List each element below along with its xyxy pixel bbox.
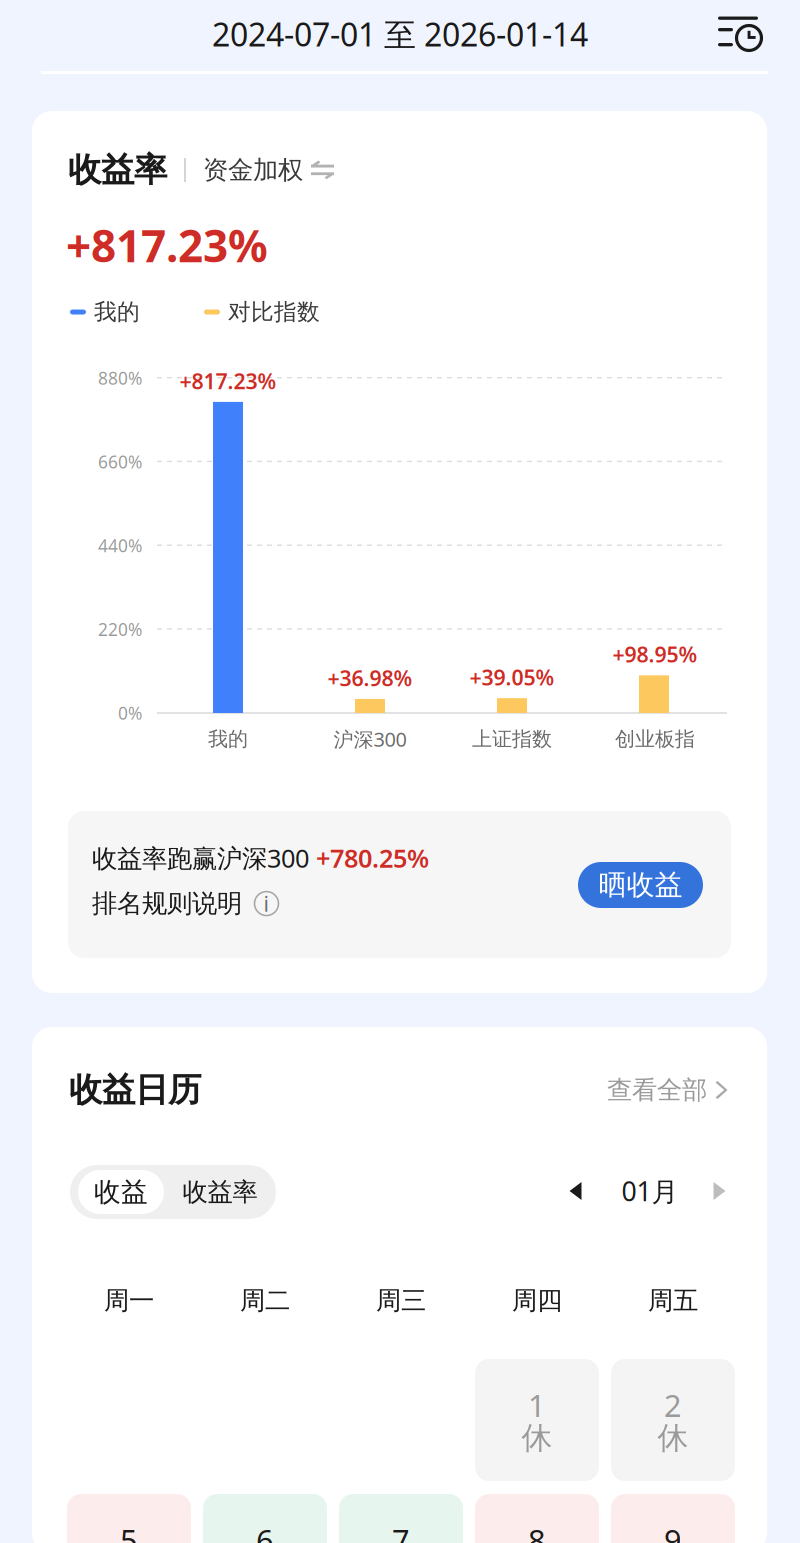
staticText: 创业板指 [615, 727, 695, 751]
staticText: 我的 [208, 727, 248, 751]
staticText: +36.98% [327, 664, 412, 692]
staticText: 对比指数 [228, 298, 320, 326]
button[interactable]: 5 [67, 1494, 191, 1543]
button[interactable]: 晒收益 [578, 862, 703, 908]
staticText: +780.25% [316, 841, 429, 875]
button[interactable]: 查看全部 [607, 1074, 729, 1105]
staticText: 2024-07-01 至 2026-01-14 [212, 13, 588, 55]
button[interactable]: 资金加权 [203, 154, 335, 185]
staticText: 8 [528, 1520, 546, 1543]
staticText: 上证指数 [472, 727, 552, 751]
button[interactable]: 下个月 [701, 1172, 739, 1210]
button[interactable]: 1 [475, 1359, 599, 1481]
staticText: 晒收益 [598, 868, 682, 902]
staticText: 440% [98, 534, 142, 557]
staticText: 收益率跑赢沪深300 [92, 841, 316, 875]
button[interactable]: 2 [611, 1359, 735, 1481]
staticText: 收益日历 [69, 1069, 201, 1110]
staticText: 沪深300 [333, 726, 406, 752]
staticText: +39.05% [469, 663, 554, 691]
button[interactable]: 排名规则说明 [92, 888, 279, 919]
button[interactable]: 上个月 [557, 1172, 595, 1210]
button[interactable]: 6 [203, 1494, 327, 1543]
staticText: 周一 [104, 1285, 154, 1316]
button[interactable]: 收益 [78, 1170, 164, 1214]
staticText: 5 [120, 1520, 138, 1543]
staticText: 周四 [512, 1285, 562, 1316]
staticText: 周五 [648, 1285, 698, 1316]
staticText: 220% [98, 618, 142, 641]
staticText: 2 [664, 1385, 682, 1425]
staticText: 880% [98, 366, 142, 389]
staticText: 1 [528, 1385, 546, 1425]
staticText: 660% [98, 450, 142, 473]
staticText: 收益率 [182, 1176, 257, 1207]
button[interactable]: 收益率 [170, 1170, 270, 1214]
staticText: 资金加权 [203, 154, 303, 185]
staticText: +817.23% [179, 367, 276, 395]
staticText: 我的 [94, 298, 140, 326]
staticText: 休 [521, 1419, 552, 1457]
staticText: 7 [392, 1520, 410, 1543]
staticText: +817.23% [66, 216, 268, 274]
staticText: 查看全部 [607, 1074, 707, 1105]
button[interactable]: 9 [611, 1494, 735, 1543]
staticText: 周三 [376, 1285, 426, 1316]
staticText: 收益率 [68, 149, 167, 190]
button[interactable]: 历史记录 [705, 8, 763, 62]
staticText: +98.95% [612, 640, 697, 668]
staticText: 0% [118, 701, 142, 724]
staticText: i [263, 889, 269, 918]
staticText: 01月 [621, 1173, 678, 1209]
staticText: 排名规则说明 [92, 888, 242, 919]
staticText: 9 [664, 1520, 682, 1543]
staticText: 收益 [94, 1176, 148, 1208]
button[interactable]: 7 [339, 1494, 463, 1543]
button[interactable]: 8 [475, 1494, 599, 1543]
staticText: 休 [657, 1419, 688, 1457]
staticText: 周二 [240, 1285, 290, 1316]
staticText: 6 [256, 1520, 274, 1543]
